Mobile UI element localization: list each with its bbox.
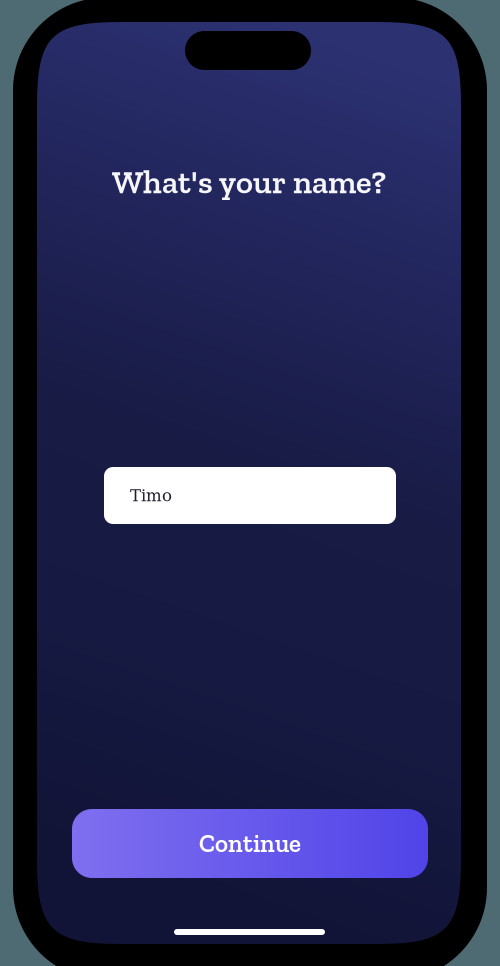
button[interactable]: Continue xyxy=(72,809,428,878)
staticText: What's your name? xyxy=(112,162,386,201)
button[interactable]: Timo xyxy=(104,467,396,524)
staticText: Continue xyxy=(199,828,301,858)
staticText: Timo xyxy=(130,486,172,505)
